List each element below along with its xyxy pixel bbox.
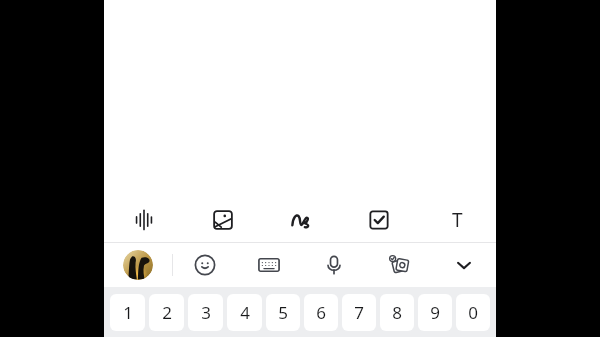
- button[interactable]: Keyboard: [237, 243, 301, 287]
- staticText: 3: [201, 301, 211, 324]
- button[interactable]: Emoji: [173, 243, 237, 287]
- button[interactable]: Handwriting: [262, 197, 340, 242]
- staticText: 1: [123, 301, 133, 324]
- button[interactable]: 1: [110, 294, 145, 331]
- button[interactable]: 8: [380, 294, 414, 331]
- button[interactable]: 6: [304, 294, 338, 331]
- staticText: 6: [316, 301, 326, 324]
- button[interactable]: 7: [342, 294, 376, 331]
- button[interactable]: Voice input: [301, 243, 366, 287]
- button[interactable]: 2: [149, 294, 184, 331]
- staticText: 7: [354, 301, 364, 324]
- staticText: T: [452, 207, 463, 233]
- button[interactable]: Insert image: [183, 197, 262, 242]
- staticText: 0: [468, 301, 478, 324]
- staticText: 5: [278, 301, 288, 324]
- staticText: 2: [162, 301, 172, 324]
- button[interactable]: 4: [227, 294, 262, 331]
- button[interactable]: Checklist: [340, 197, 418, 242]
- button[interactable]: 5: [266, 294, 300, 331]
- button[interactable]: T: [418, 197, 496, 242]
- button[interactable]: Collapse: [431, 243, 496, 287]
- button[interactable]: Stickers: [366, 243, 431, 287]
- button[interactable]: 9: [418, 294, 452, 331]
- staticText: 4: [240, 301, 250, 324]
- button[interactable]: 0: [456, 294, 490, 331]
- button[interactable]: 3: [188, 294, 223, 331]
- button[interactable]: Audio message: [104, 197, 183, 242]
- staticText: 9: [430, 301, 440, 324]
- staticText: 8: [392, 301, 402, 324]
- button[interactable]: Profile: [104, 243, 172, 287]
